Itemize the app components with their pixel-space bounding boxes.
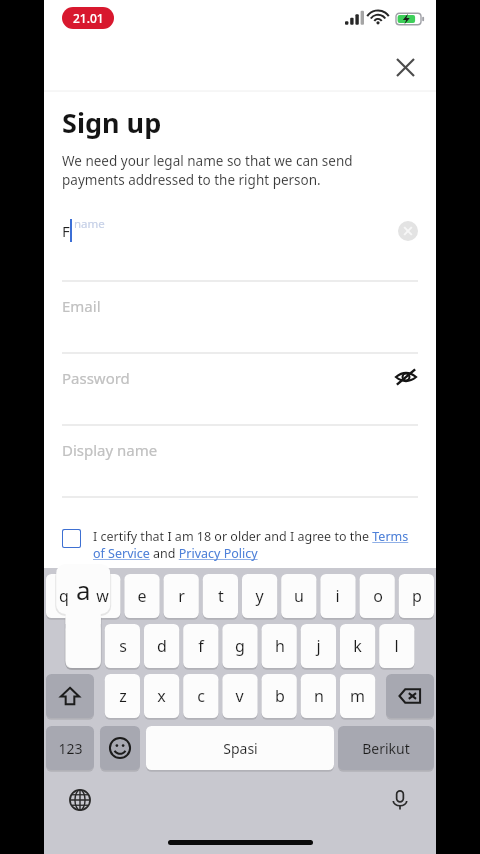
- button[interactable]: o: [360, 574, 395, 618]
- staticText: 123: [58, 739, 83, 758]
- button[interactable]: d: [144, 624, 179, 668]
- staticText: l: [394, 635, 399, 657]
- staticText: w: [96, 585, 109, 607]
- button[interactable]: e: [124, 574, 159, 618]
- button[interactable]: Shift: [46, 674, 94, 718]
- button[interactable]: r: [164, 574, 199, 618]
- button[interactable]: x: [144, 674, 179, 718]
- staticText: I certify that I am 18 or older and I ag…: [93, 528, 418, 562]
- staticText: Password: [62, 368, 130, 388]
- button[interactable]: Backspace: [386, 674, 434, 718]
- button[interactable]: Password: [44, 354, 436, 426]
- staticText: y: [255, 585, 264, 607]
- button[interactable]: k: [340, 624, 375, 668]
- staticText: p: [412, 585, 422, 607]
- staticText: e: [137, 585, 147, 607]
- button[interactable]: j: [301, 624, 336, 668]
- button[interactable]: g: [222, 624, 257, 668]
- staticText: n: [314, 685, 324, 707]
- staticText: name: [74, 216, 105, 232]
- staticText: h: [275, 635, 285, 657]
- button[interactable]: l: [379, 624, 414, 668]
- staticText: 21.01: [73, 10, 104, 26]
- staticText: k: [353, 635, 362, 657]
- staticText: u: [294, 585, 304, 607]
- button[interactable]: i: [320, 574, 355, 618]
- button[interactable]: 123: [46, 726, 94, 770]
- staticText: d: [157, 635, 167, 657]
- button[interactable]: name: [44, 210, 436, 282]
- staticText: o: [373, 585, 383, 607]
- button[interactable]: Change keyboard language: [58, 780, 102, 820]
- staticText: We need your legal name so that we can s…: [62, 152, 416, 188]
- staticText: b: [275, 685, 285, 707]
- button[interactable]: c: [183, 674, 218, 718]
- button[interactable]: Display name: [44, 426, 436, 498]
- staticText: x: [157, 685, 166, 707]
- button[interactable]: b: [262, 674, 297, 718]
- button[interactable]: v: [222, 674, 257, 718]
- staticText: s: [119, 635, 127, 657]
- button[interactable]: Spasi: [146, 726, 334, 770]
- button[interactable]: z: [105, 674, 140, 718]
- button[interactable]: h: [262, 624, 297, 668]
- button[interactable]: w: [85, 574, 120, 618]
- button[interactable]: y: [242, 574, 277, 618]
- button[interactable]: I certify that I am 18 or older and I ag…: [62, 528, 418, 562]
- staticText: m: [350, 685, 365, 707]
- staticText: Email: [62, 296, 101, 316]
- staticText: c: [197, 685, 205, 707]
- button[interactable]: Clear text: [396, 219, 420, 243]
- staticText: r: [178, 585, 185, 607]
- staticText: i: [335, 585, 340, 607]
- button[interactable]: Emoji: [100, 726, 140, 770]
- button[interactable]: q: [46, 574, 81, 618]
- staticText: q: [59, 585, 69, 607]
- button[interactable]: n: [301, 674, 336, 718]
- staticText: g: [235, 635, 245, 657]
- button[interactable]: Close: [387, 49, 423, 85]
- staticText: Berikut: [362, 739, 410, 758]
- button[interactable]: Show password: [389, 360, 423, 394]
- staticText: F: [62, 221, 70, 241]
- button[interactable]: Berikut: [338, 726, 434, 770]
- staticText: f: [198, 635, 204, 657]
- button[interactable]: Voice input: [378, 780, 422, 820]
- staticText: a: [76, 572, 91, 607]
- button[interactable]: t: [203, 574, 238, 618]
- staticText: j: [316, 635, 321, 657]
- staticText: Display name: [62, 440, 158, 460]
- button[interactable]: Email: [44, 282, 436, 354]
- button[interactable]: f: [183, 624, 218, 668]
- button[interactable]: a: [56, 564, 110, 614]
- staticText: Spasi: [223, 739, 258, 758]
- button[interactable]: Continue: [62, 583, 418, 629]
- staticText: t: [218, 585, 224, 607]
- button[interactable]: s: [105, 624, 140, 668]
- button[interactable]: p: [399, 574, 434, 618]
- staticText: z: [119, 685, 127, 707]
- button[interactable]: u: [281, 574, 316, 618]
- button[interactable]: m: [340, 674, 375, 718]
- staticText: Sign up: [62, 104, 162, 141]
- staticText: v: [235, 685, 244, 707]
